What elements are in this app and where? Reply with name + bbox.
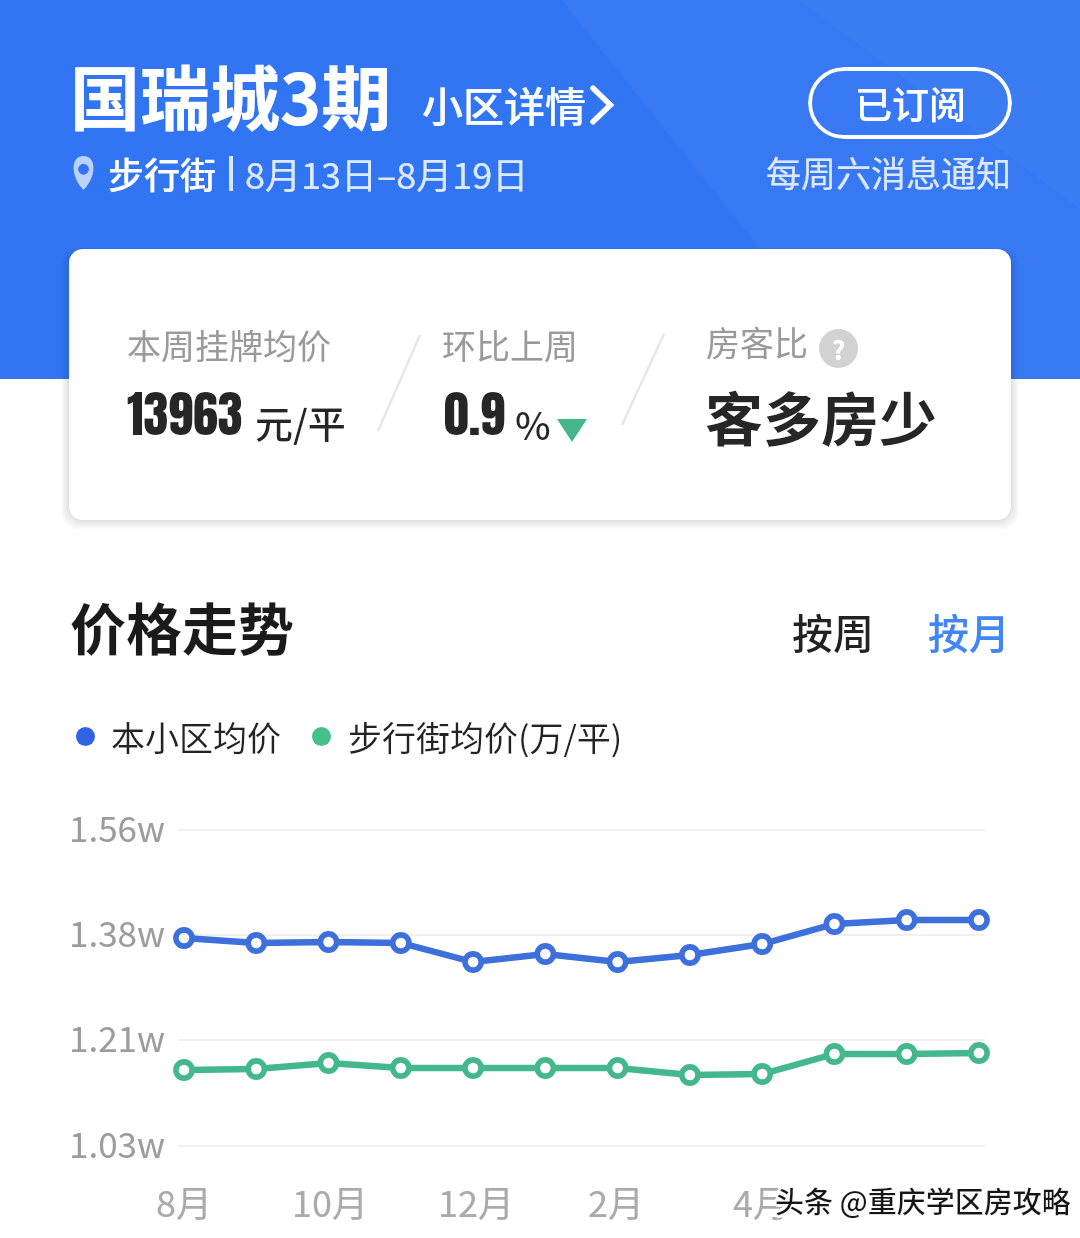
staticText: 1.21w	[69, 1011, 166, 1062]
staticText: 小区详情	[422, 74, 586, 133]
staticText: 1.03w	[69, 1117, 166, 1168]
staticText: 元/平	[255, 394, 346, 449]
staticText: 房客比	[706, 317, 808, 366]
staticText: 头条 @重庆学区房攻略	[773, 1181, 1069, 1223]
staticText: 4月	[733, 1175, 789, 1227]
staticText: 每周六消息通知	[766, 146, 1012, 197]
staticText: 头条 @重庆学区房攻略	[775, 1179, 1071, 1221]
staticText: 1.56w	[69, 801, 166, 852]
staticText: 8月	[156, 1175, 212, 1227]
staticText: 2月	[588, 1175, 644, 1227]
button[interactable]: 帮助	[819, 329, 858, 368]
staticText: 头条 @重庆学区房攻略	[772, 1179, 1068, 1221]
staticText: 头条 @重庆学区房攻略	[777, 1177, 1073, 1219]
button[interactable]: 按周	[780, 593, 886, 668]
staticText: 8月13日–8月19日	[245, 147, 529, 199]
staticText: %	[515, 396, 551, 451]
staticText: 已订阅	[855, 76, 966, 130]
staticText: 10月	[292, 1175, 368, 1227]
button[interactable]: 已订阅	[808, 67, 1012, 139]
staticText: 价格走势	[70, 585, 294, 666]
staticText: 客多房少	[705, 374, 938, 458]
staticText: 1.38w	[69, 906, 166, 957]
staticText: 环比上周	[442, 320, 578, 369]
staticText: 头条 @重庆学区房攻略	[775, 1182, 1071, 1224]
staticText: ?	[832, 330, 846, 368]
staticText: 按月	[928, 601, 1010, 660]
staticText: 头条 @重庆学区房攻略	[778, 1179, 1074, 1221]
button[interactable]: 按月	[916, 593, 1022, 668]
staticText: 国瑞城3期	[70, 44, 392, 145]
staticText: 13963	[127, 376, 243, 451]
staticText: 步行街均价(万/平)	[348, 712, 623, 761]
staticText: 头条 @重庆学区房攻略	[777, 1181, 1073, 1223]
button[interactable]: 小区详情	[422, 74, 616, 145]
staticText: 头条 @重庆学区房攻略	[773, 1177, 1069, 1219]
staticText: 0.9	[444, 376, 505, 451]
staticText: 步行街	[108, 147, 217, 199]
staticText: 本小区均价	[111, 712, 281, 761]
staticText: 按周	[792, 601, 874, 660]
staticText: 本周挂牌均价	[127, 320, 331, 369]
staticText: 12月	[438, 1175, 514, 1227]
staticText: 头条 @重庆学区房攻略	[775, 1176, 1071, 1218]
